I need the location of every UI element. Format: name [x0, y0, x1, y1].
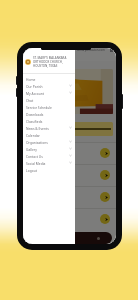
staticText: Classifieds — [26, 119, 43, 123]
staticText: My Account — [26, 91, 45, 95]
staticText: News & Events — [26, 126, 49, 130]
staticText: Calendar — [26, 133, 40, 137]
staticText: Gallery — [26, 147, 37, 151]
button[interactable]: Classifieds — [23, 117, 75, 124]
button[interactable] — [23, 186, 116, 208]
button[interactable] — [26, 122, 113, 136]
button[interactable] — [23, 164, 116, 186]
staticText: Contact Us — [26, 154, 43, 158]
staticText: Chat — [26, 98, 34, 102]
button[interactable]: Service Schedule — [23, 103, 75, 110]
button[interactable]: My Account — [23, 89, 75, 96]
button[interactable]: Gallery — [23, 145, 75, 152]
staticText: Social Media — [26, 161, 46, 165]
staticText: Logout — [26, 168, 37, 172]
staticText: ST. MARY'S MALANKARA ORTHODOX CHURCH, HO… — [33, 56, 67, 68]
staticText: Our Parish — [26, 84, 43, 88]
button[interactable]: Contact Us — [23, 152, 75, 159]
button[interactable]: News & Events — [23, 124, 75, 131]
button[interactable]: Home — [23, 75, 75, 82]
button[interactable] — [23, 142, 116, 164]
button[interactable]: Chat — [23, 96, 75, 103]
staticText: Home — [26, 77, 36, 81]
staticText: Service Schedule — [26, 105, 52, 109]
staticText: Downloads — [26, 112, 44, 116]
staticText: stmaryshouston.com — [77, 48, 105, 52]
staticText: Organisations — [26, 140, 48, 144]
button[interactable]: Downloads — [23, 110, 75, 117]
button[interactable]: Social Media — [23, 159, 75, 166]
button[interactable]: Logout — [23, 166, 75, 173]
button[interactable]: Our Parish — [23, 82, 75, 89]
button[interactable] — [23, 208, 116, 230]
button[interactable]: Now playing — [27, 232, 112, 244]
button[interactable]: Organisations — [23, 138, 75, 145]
button[interactable]: Calendar — [23, 131, 75, 138]
